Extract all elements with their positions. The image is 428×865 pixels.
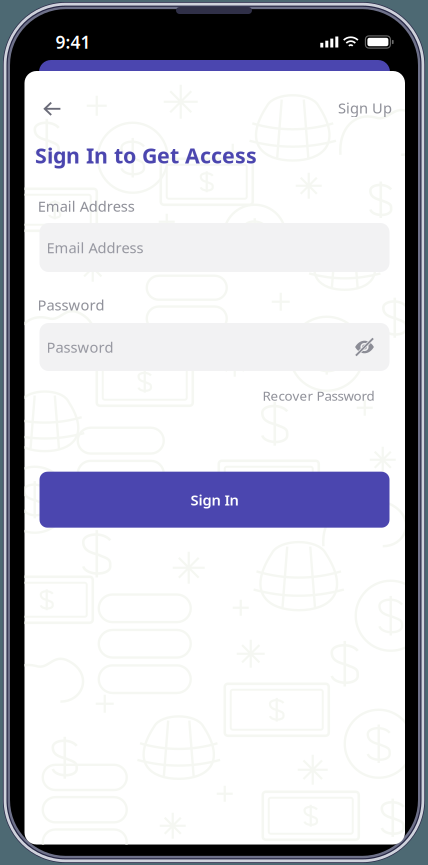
staticText: Sign In	[190, 490, 238, 509]
staticText: Email Address	[47, 238, 144, 257]
button[interactable]: Back	[30, 89, 74, 129]
staticText: Recover Password	[262, 387, 374, 404]
button[interactable]: Recover Password	[254, 384, 374, 406]
button[interactable]: Sign Up	[322, 89, 392, 127]
staticText: Password	[38, 295, 105, 314]
button[interactable]: Sign In	[39, 472, 389, 528]
staticText: Email Address	[38, 196, 135, 216]
button[interactable]: Show password	[347, 330, 381, 364]
staticText: 9:41	[55, 30, 90, 53]
staticText: Sign Up	[338, 98, 392, 118]
staticText: Password	[47, 337, 114, 357]
staticText: Sign In to Get Access	[35, 141, 257, 169]
